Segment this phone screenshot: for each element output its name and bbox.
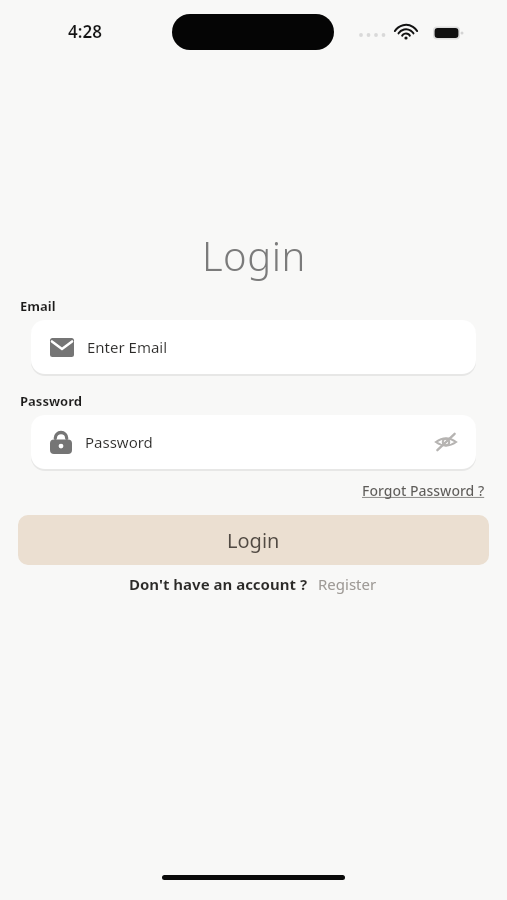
- staticText: Register: [318, 574, 377, 594]
- button[interactable]: Login: [18, 515, 489, 565]
- staticText: Don't have an account ?: [129, 574, 308, 594]
- button[interactable]: Forgot Password ?: [362, 479, 507, 502]
- staticText: Login: [227, 527, 280, 554]
- staticText: Password: [20, 392, 82, 410]
- button[interactable]: Password: [31, 415, 476, 469]
- staticText: Password: [85, 432, 153, 452]
- button[interactable]: Show password: [426, 422, 466, 462]
- staticText: 4:28: [68, 20, 102, 43]
- staticText: Email: [20, 297, 56, 315]
- button[interactable]: Enter Email: [31, 320, 476, 374]
- button[interactable]: Register: [316, 572, 379, 596]
- staticText: Login: [202, 228, 306, 282]
- staticText: Forgot Password ?: [362, 481, 485, 500]
- staticText: Enter Email: [87, 337, 168, 357]
